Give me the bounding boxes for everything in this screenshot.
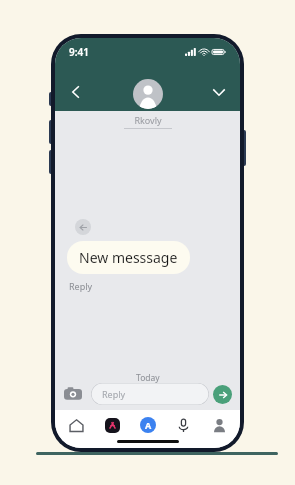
button[interactable]: Profile bbox=[204, 414, 234, 436]
button[interactable]: Microphone bbox=[168, 414, 198, 436]
button[interactable]: Contact avatar bbox=[133, 79, 163, 109]
button[interactable]: Back bbox=[61, 77, 91, 107]
button[interactable]: Assistant bbox=[133, 414, 163, 436]
button[interactable]: Send bbox=[213, 385, 232, 404]
staticText: Reply bbox=[69, 280, 93, 292]
button[interactable]: Camera bbox=[63, 384, 83, 404]
staticText: New messsage bbox=[79, 248, 178, 267]
button[interactable]: New messsage bbox=[67, 241, 190, 274]
staticText: Reply bbox=[102, 388, 126, 400]
button[interactable]: Home bbox=[61, 414, 91, 436]
staticText: A bbox=[145, 419, 152, 431]
button[interactable]: Stories bbox=[97, 414, 127, 436]
button[interactable]: More options bbox=[204, 77, 234, 107]
staticText: Today bbox=[136, 372, 160, 384]
staticText: Rkovly bbox=[134, 114, 162, 126]
staticText: 9:41 bbox=[69, 45, 89, 59]
button[interactable]: Reply bbox=[91, 383, 209, 405]
